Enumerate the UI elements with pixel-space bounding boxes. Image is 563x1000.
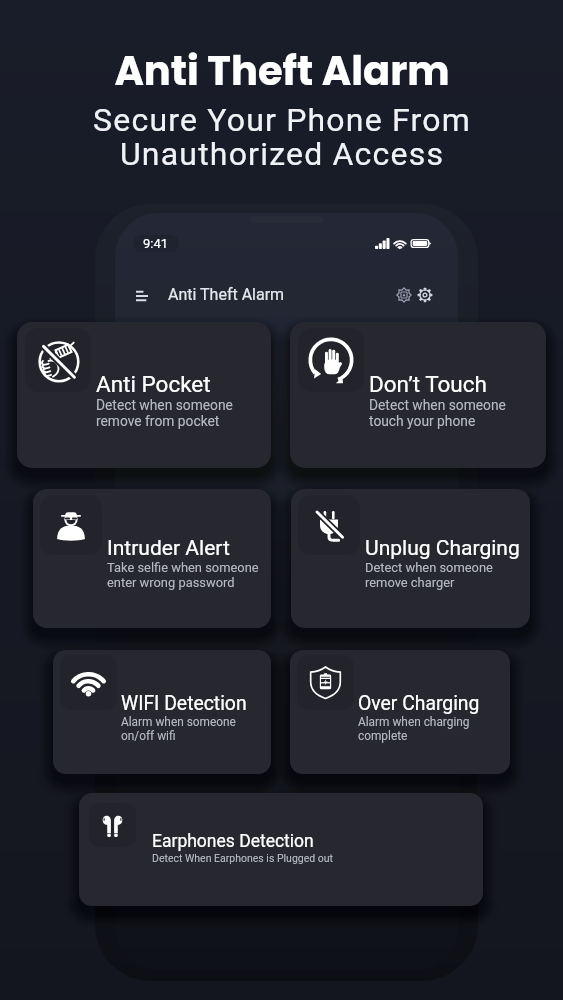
staticText: Anti Theft Alarm: [114, 43, 450, 99]
button[interactable]: Menu: [136, 291, 148, 301]
staticText: 9:41: [143, 236, 169, 251]
staticText: Detect when someone remove from pocket: [96, 397, 233, 430]
staticText: Unplug Charging: [365, 535, 520, 560]
button[interactable]: Unplug Charging: [291, 489, 530, 628]
staticText: Earphones Detection: [152, 831, 314, 852]
button[interactable]: Over Charging: [290, 650, 510, 774]
button[interactable]: Settings: [417, 287, 433, 303]
staticText: Detect when someone remove charger: [365, 560, 493, 591]
staticText: Detect when someone touch your phone: [369, 397, 506, 430]
staticText: Alarm when charging complete: [358, 715, 470, 743]
button[interactable]: WIFI Detection: [53, 650, 271, 774]
button[interactable]: Don’t Touch: [290, 322, 546, 468]
button[interactable]: Intruder Alert: [33, 489, 271, 628]
button[interactable]: Notifications: [396, 287, 412, 303]
button[interactable]: Anti Pocket: [17, 322, 271, 468]
staticText: Secure Your Phone From Unauthorized Acce…: [93, 101, 471, 173]
staticText: Anti Theft Alarm: [168, 285, 285, 304]
staticText: WIFI Detection: [121, 692, 247, 715]
staticText: Alarm when someone on/off wifi: [121, 715, 236, 743]
staticText: Don’t Touch: [369, 371, 487, 397]
staticText: Detect When Earphones is Plugged out: [152, 852, 334, 864]
staticText: Intruder Alert: [107, 535, 230, 560]
staticText: Over Charging: [358, 692, 480, 715]
staticText: Anti Pocket: [96, 371, 211, 397]
button[interactable]: Earphones Detection: [79, 793, 483, 906]
staticText: Take selfie when someone enter wrong pas…: [107, 560, 259, 591]
